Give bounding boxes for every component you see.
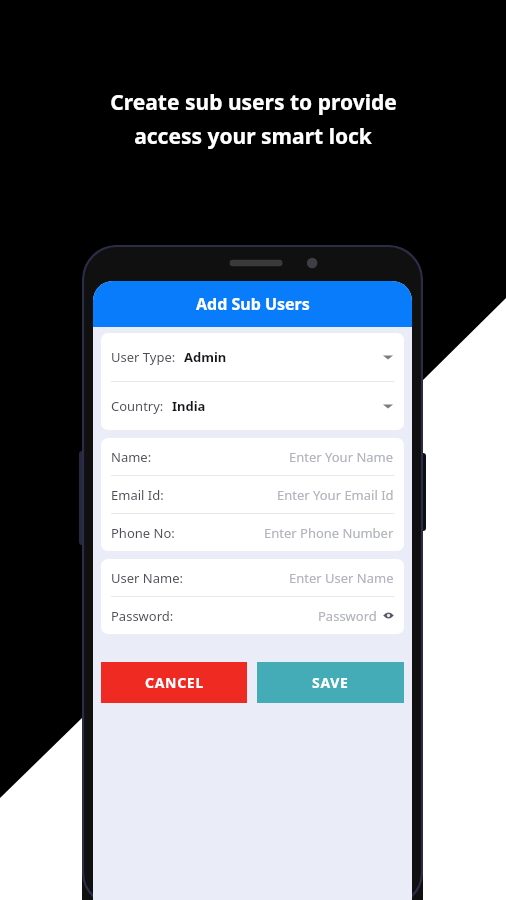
staticText: Add Sub Users bbox=[196, 293, 310, 315]
button[interactable]: Password: bbox=[101, 597, 404, 634]
other: Open dropdown bbox=[382, 351, 394, 363]
button[interactable]: Country: bbox=[101, 382, 404, 430]
staticText: India bbox=[172, 397, 206, 415]
staticText: Password: bbox=[111, 607, 174, 625]
staticText: User Name: bbox=[111, 569, 183, 587]
other: Open dropdown bbox=[382, 400, 394, 412]
staticText: CANCEL bbox=[145, 673, 204, 692]
staticText: User Type: bbox=[111, 348, 176, 366]
staticText: Enter Your Email Id bbox=[277, 486, 394, 504]
staticText: Phone No: bbox=[111, 524, 175, 542]
staticText: Name: bbox=[111, 448, 152, 466]
button[interactable]: Name: bbox=[101, 438, 404, 475]
staticText: Password bbox=[318, 607, 377, 625]
button[interactable]: SAVE bbox=[257, 662, 404, 703]
button[interactable]: Email Id: bbox=[101, 476, 404, 513]
staticText: Admin bbox=[184, 348, 227, 366]
button[interactable]: User Type: bbox=[101, 333, 404, 381]
staticText: Country: bbox=[111, 397, 164, 415]
staticText: Create sub users to provide bbox=[110, 88, 397, 117]
button[interactable]: User Name: bbox=[101, 559, 404, 596]
staticText: Enter Phone Number bbox=[264, 524, 394, 542]
button[interactable]: Phone No: bbox=[101, 514, 404, 551]
other: Show password bbox=[383, 610, 394, 621]
staticText: Email Id: bbox=[111, 486, 164, 504]
staticText: SAVE bbox=[312, 673, 349, 692]
staticText: access your smart lock bbox=[134, 122, 372, 151]
staticText: Enter Your Name bbox=[289, 448, 394, 466]
button[interactable]: CANCEL bbox=[101, 662, 247, 703]
staticText: Enter User Name bbox=[289, 569, 394, 587]
